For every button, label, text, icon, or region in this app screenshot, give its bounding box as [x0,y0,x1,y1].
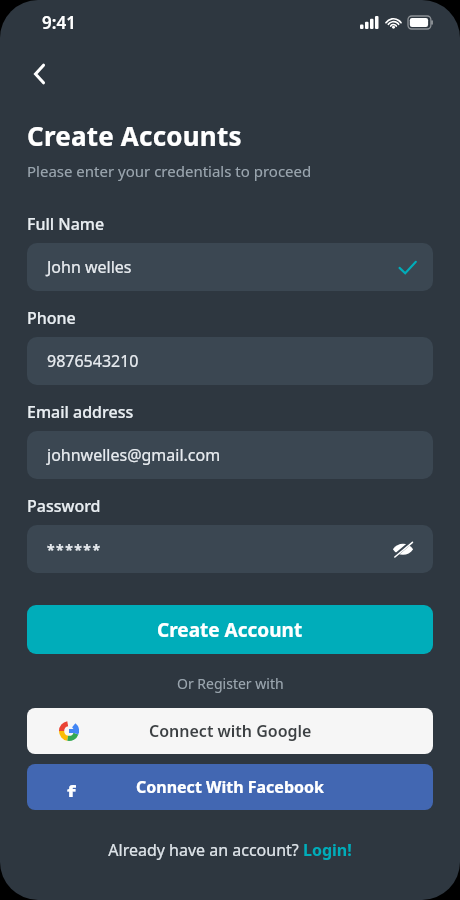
button[interactable]: Connect with Google [27,708,433,754]
staticText: Full Name [27,213,105,235]
staticText: Phone [27,307,76,329]
button[interactable]: ****** [27,525,433,573]
staticText: Already have an account? Login! [108,839,352,861]
button[interactable]: f [27,764,433,810]
staticText: John welles [47,256,398,278]
button[interactable]: 9876543210 [27,337,433,385]
staticText: Create Accounts [27,118,242,153]
staticText: Password [27,495,101,517]
staticText: Email address [27,401,134,423]
staticText: 9:41 [42,11,76,34]
button[interactable]: John welles [27,243,433,291]
staticText: johnwelles@gmail.com [47,444,417,466]
staticText: Please enter your credentials to proceed [27,161,327,181]
button[interactable]: Toggle password visibility [389,535,417,563]
staticText: Or Register with [177,674,284,693]
staticText: ****** [47,540,389,559]
staticText: Create Account [157,617,303,643]
staticText: f [67,777,76,797]
button[interactable]: Back [18,52,62,96]
button[interactable]: Create Account [27,605,433,654]
staticText: Connect With Facebook [136,776,324,798]
button[interactable]: johnwelles@gmail.com [27,431,433,479]
button[interactable]: Already have an account? Login! [0,830,460,870]
staticText: Connect with Google [149,720,312,742]
staticText: 9876543210 [47,350,417,372]
